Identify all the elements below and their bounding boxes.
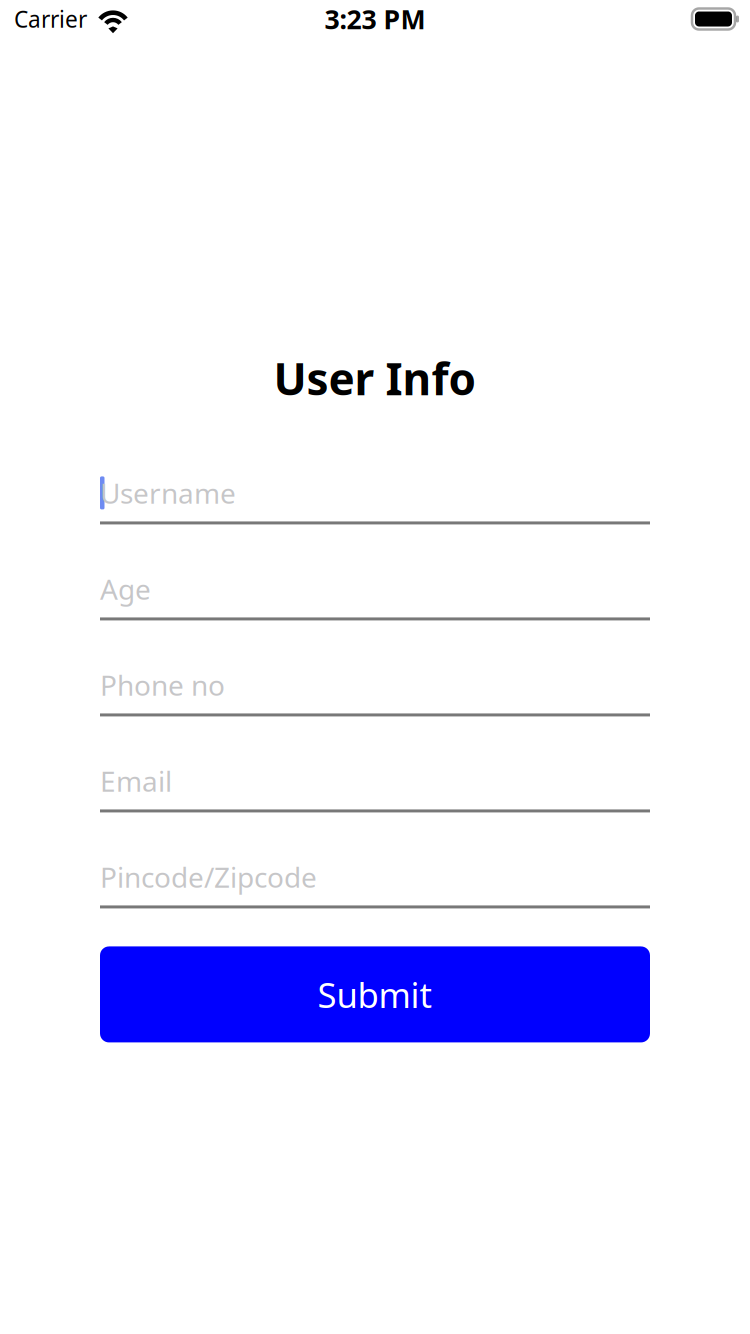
button[interactable]: Age	[100, 560, 650, 620]
staticText: Email	[100, 762, 172, 799]
staticText: Age	[100, 570, 151, 607]
staticText: Username	[100, 474, 236, 511]
staticText: Phone no	[100, 666, 225, 703]
button[interactable]: Phone no	[100, 656, 650, 716]
button[interactable]: Email	[100, 752, 650, 812]
button[interactable]: Username	[100, 464, 650, 524]
staticText: 3:23 PM	[324, 1, 425, 37]
staticText: Carrier	[14, 4, 87, 34]
staticText: Submit	[317, 971, 432, 1017]
staticText: Pincode/Zipcode	[100, 858, 317, 895]
button[interactable]: Submit	[100, 946, 650, 1042]
button[interactable]: Pincode/Zipcode	[100, 848, 650, 908]
staticText: User Info	[273, 349, 476, 407]
